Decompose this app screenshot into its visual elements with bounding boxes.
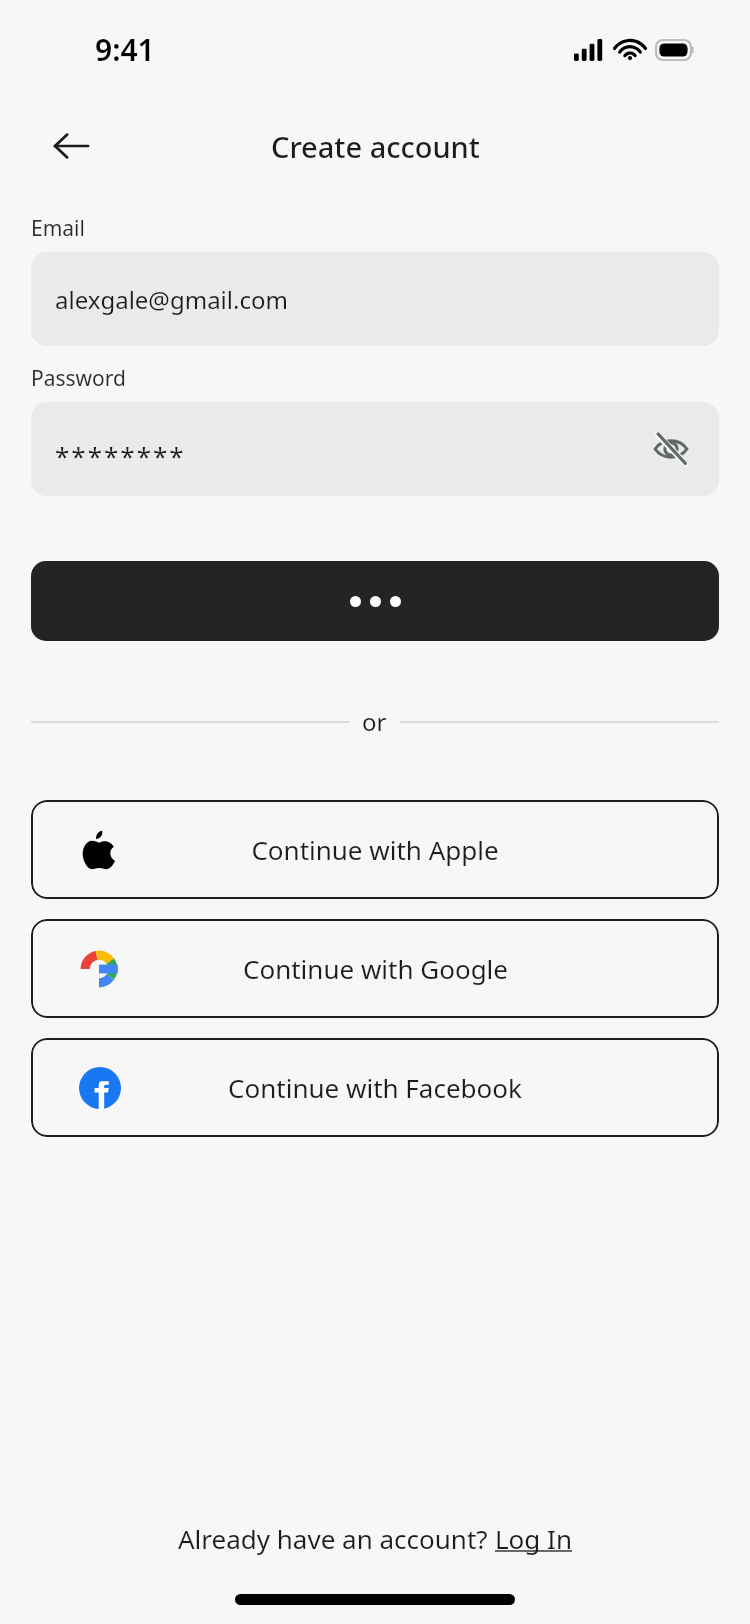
staticText: Log In [495, 1521, 572, 1556]
staticText: 9:41 [95, 29, 155, 70]
button[interactable]: Hide password [645, 423, 697, 475]
staticText: Continue with Google [243, 951, 508, 986]
staticText: Continue with Apple [251, 832, 499, 867]
staticText: Already have an account? [178, 1521, 495, 1556]
button[interactable]: Back [38, 113, 104, 179]
button[interactable]: Continue with Apple [31, 800, 719, 899]
staticText: Create account [271, 127, 480, 166]
button[interactable]: Continue with Facebook [31, 1038, 719, 1137]
button[interactable]: alexgale@gmail.com [31, 252, 719, 346]
button[interactable]: Already have an account? [0, 1521, 750, 1556]
staticText: ******** [55, 438, 186, 473]
staticText: or [362, 705, 387, 738]
button[interactable]: ******** [31, 402, 719, 496]
staticText: Continue with Facebook [228, 1070, 522, 1105]
staticText: Email [31, 214, 85, 243]
button[interactable]: Submit, loading [31, 561, 719, 641]
staticText: alexgale@gmail.com [55, 283, 288, 316]
staticText: Password [31, 364, 126, 393]
button[interactable]: Continue with Google [31, 919, 719, 1018]
